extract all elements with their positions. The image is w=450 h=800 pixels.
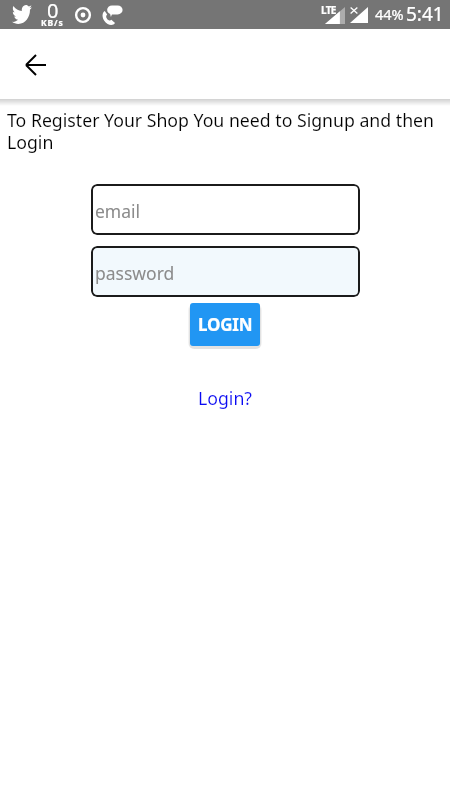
staticText: 5:41 [406, 1, 444, 27]
staticText: KB/s [41, 17, 64, 29]
button[interactable]: Back [13, 43, 57, 87]
staticText: To Register Your Shop You need to Signup… [7, 108, 446, 154]
staticText: email [95, 199, 141, 223]
button[interactable]: Login? [186, 378, 265, 418]
button[interactable]: password [91, 246, 360, 297]
staticText: 0 [47, 0, 59, 24]
staticText: password [95, 261, 175, 285]
staticText: LTE [321, 3, 336, 17]
staticText: LOGIN [198, 313, 253, 336]
staticText: 44% [375, 4, 404, 24]
button[interactable]: LOGIN [190, 303, 260, 346]
staticText: Login? [198, 386, 253, 410]
button[interactable]: email [91, 184, 360, 235]
